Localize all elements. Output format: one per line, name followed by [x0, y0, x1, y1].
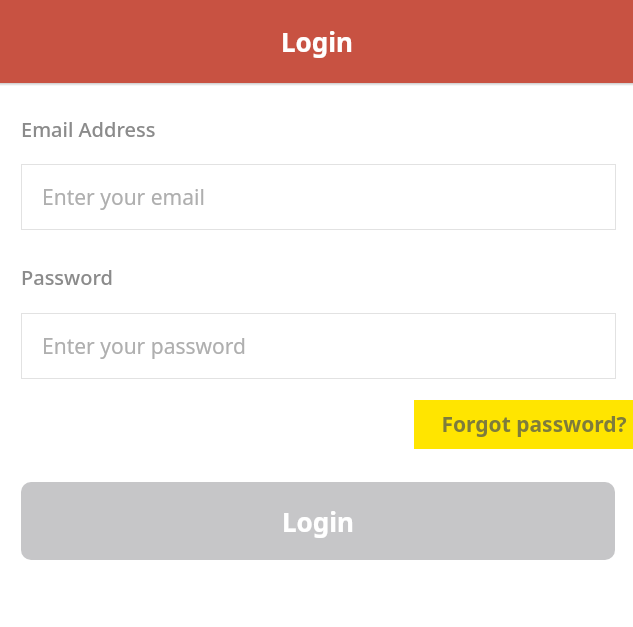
button[interactable]: Enter your password [21, 313, 616, 379]
staticText: Enter your email [42, 183, 205, 212]
button[interactable]: Login [21, 482, 615, 560]
staticText: Login [282, 504, 354, 539]
staticText: Password [21, 264, 113, 291]
staticText: Enter your password [42, 332, 246, 361]
staticText: Email Address [21, 116, 156, 143]
button[interactable]: Enter your email [21, 164, 616, 230]
staticText: Login [281, 24, 353, 59]
staticText: Forgot password? [441, 410, 627, 439]
button[interactable]: Forgot password? [414, 400, 633, 449]
